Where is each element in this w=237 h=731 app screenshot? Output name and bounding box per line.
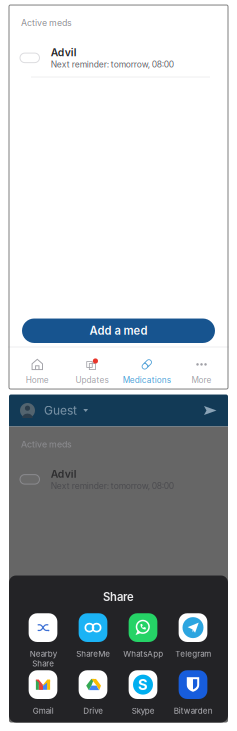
staticText: Updates xyxy=(75,375,108,385)
button[interactable]: Bitwarden xyxy=(168,670,218,727)
staticText: More xyxy=(191,375,211,385)
staticText: Medications xyxy=(123,375,171,385)
staticText: Share xyxy=(103,590,134,604)
staticText: Nearby Share xyxy=(29,649,56,668)
staticText: ShareMe xyxy=(76,649,110,659)
staticText: S xyxy=(138,676,148,693)
staticText: Next reminder: tomorrow, 08:00 xyxy=(51,481,174,491)
staticText: Active meds xyxy=(21,17,72,28)
button[interactable]: ShareMe xyxy=(68,613,118,670)
button[interactable]: Send xyxy=(203,405,217,415)
staticText: Gmail xyxy=(32,706,53,716)
button[interactable]: S xyxy=(118,670,168,727)
staticText: Skype xyxy=(131,706,154,716)
button[interactable]: Home xyxy=(10,357,65,395)
staticText: Bitwarden xyxy=(173,706,212,716)
staticText: Guest xyxy=(44,403,77,418)
staticText: WhatsApp xyxy=(123,649,163,659)
button[interactable]: Gmail xyxy=(18,670,68,727)
button[interactable]: Drive xyxy=(68,670,118,727)
button[interactable]: Medications xyxy=(119,357,174,395)
staticText: Active meds xyxy=(21,439,72,450)
button[interactable]: More xyxy=(174,357,229,395)
staticText: Advil xyxy=(51,46,77,59)
staticText: Advil xyxy=(51,468,77,480)
staticText: Next reminder: tomorrow, 08:00 xyxy=(51,59,174,69)
button[interactable]: Add a med xyxy=(22,318,215,343)
staticText: Add a med xyxy=(89,324,147,338)
button[interactable]: Telegram xyxy=(168,613,218,670)
staticText: Telegram xyxy=(175,649,211,659)
staticText: Home xyxy=(26,375,49,385)
button[interactable]: WhatsApp xyxy=(118,613,168,670)
button[interactable]: Nearby Share xyxy=(18,613,68,670)
button[interactable]: Guest xyxy=(20,403,88,418)
button[interactable]: Updates xyxy=(65,357,119,395)
staticText: Drive xyxy=(83,706,103,716)
